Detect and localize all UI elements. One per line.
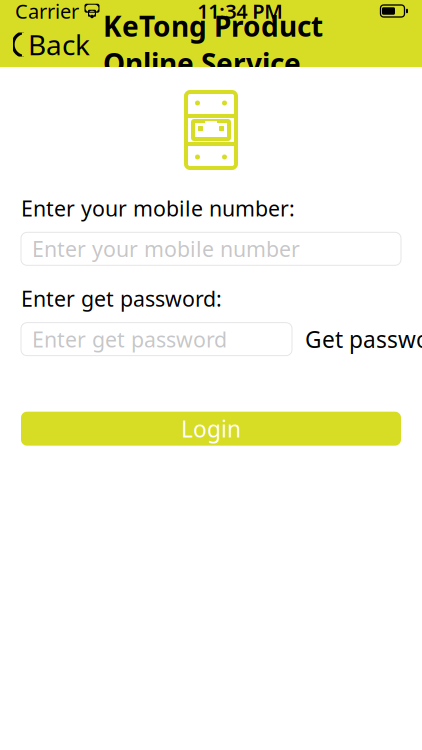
staticText: Enter get password (32, 325, 227, 353)
button[interactable]: Back (0, 22, 98, 67)
staticText: Get password (305, 324, 422, 354)
staticText: Enter your mobile number: (21, 194, 295, 222)
button[interactable]: Enter get password (21, 323, 292, 356)
staticText: Login (181, 414, 241, 444)
button[interactable]: Get password (292, 323, 422, 356)
staticText: 11:34 PM (197, 0, 283, 24)
button[interactable]: Enter your mobile number (21, 232, 401, 265)
staticText: KeTong Product Online Service (103, 7, 323, 82)
button[interactable]: Login (21, 412, 401, 446)
staticText: Enter get password: (21, 284, 222, 313)
staticText: Enter your mobile number (32, 235, 300, 263)
staticText: Carrier (15, 0, 79, 24)
staticText: Back (28, 26, 90, 63)
